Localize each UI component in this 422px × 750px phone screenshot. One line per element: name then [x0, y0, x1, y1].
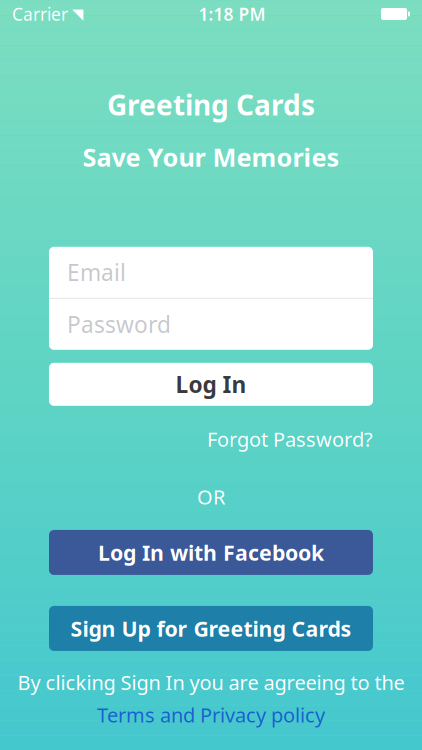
staticText: By clicking Sign In you are agreeing to … — [17, 669, 404, 695]
staticText: ◥ — [72, 6, 83, 22]
staticText: Terms and Privacy policy — [97, 701, 325, 728]
button[interactable]: Log In with Facebook — [49, 530, 373, 575]
staticText: Password — [67, 309, 171, 339]
staticText: Greeting Cards — [107, 86, 315, 123]
button[interactable]: Terms and Privacy policy — [97, 701, 325, 728]
button[interactable]: Sign Up for Greeting Cards — [49, 606, 373, 651]
button[interactable]: Email — [49, 247, 373, 298]
staticText: Save Your Memories — [82, 140, 339, 174]
button[interactable]: Log In — [49, 363, 373, 406]
button[interactable]: Password — [49, 299, 373, 350]
staticText: Log In with Facebook — [98, 538, 324, 567]
staticText: Sign Up for Greeting Cards — [70, 614, 351, 643]
staticText: Email — [67, 257, 126, 287]
staticText: Log In — [175, 369, 246, 399]
button[interactable]: Forgot Password? — [207, 424, 373, 454]
staticText: Forgot Password? — [207, 426, 373, 452]
staticText: OR — [197, 483, 225, 510]
staticText: 1:18 PM — [198, 2, 265, 25]
staticText: Carrier — [12, 2, 68, 25]
